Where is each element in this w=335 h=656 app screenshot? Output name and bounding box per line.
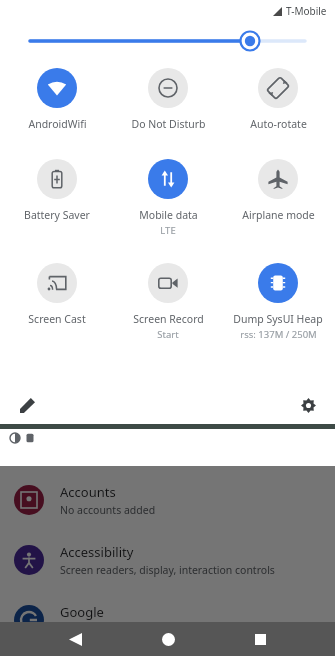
button[interactable]: Settings <box>295 392 321 418</box>
button[interactable]: Mobile data <box>114 159 222 237</box>
staticText: Airplane mode <box>242 208 315 222</box>
staticText: Battery Saver <box>24 208 90 222</box>
button[interactable]: Recents <box>243 622 277 656</box>
staticText: Screen Cast <box>28 312 86 326</box>
staticText: Services & preferences <box>60 623 172 637</box>
staticText: Dump SysUI Heap <box>233 312 323 326</box>
button[interactable]: Home <box>151 622 185 656</box>
staticText: rss: 137M / 250M <box>240 328 317 341</box>
button[interactable]: Battery Saver <box>3 159 111 222</box>
staticText: Screen readers, display, interaction con… <box>60 563 275 577</box>
staticText: No accounts added <box>60 503 156 517</box>
button[interactable]: Airplane mode <box>224 159 332 222</box>
button[interactable]: Brightness <box>30 22 305 60</box>
button[interactable]: AndroidWifi <box>3 68 111 131</box>
staticText: Accessibility <box>60 543 134 561</box>
button[interactable]: Do Not Disturb <box>114 68 222 131</box>
staticText: AndroidWifi <box>28 117 87 131</box>
staticText: Auto-rotate <box>250 117 307 131</box>
staticText: Do Not Disturb <box>131 117 206 131</box>
staticText: T-Mobile <box>286 4 327 18</box>
staticText: LTE <box>160 224 176 237</box>
staticText: Mobile data <box>139 208 198 222</box>
staticText: Screen Record <box>133 312 204 326</box>
button[interactable]: Screen Cast <box>3 263 111 326</box>
button[interactable]: Back <box>58 622 92 656</box>
staticText: Start <box>157 328 179 341</box>
staticText: Google <box>60 603 104 621</box>
button[interactable]: Dump SysUI Heap <box>224 263 332 341</box>
button[interactable]: Edit <box>14 392 40 418</box>
button[interactable]: Screen Record <box>114 263 222 341</box>
staticText: Accounts <box>60 483 116 501</box>
button[interactable]: Auto-rotate <box>224 68 332 131</box>
